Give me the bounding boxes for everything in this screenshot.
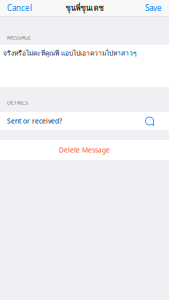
staticText: Cancel <box>7 3 32 13</box>
staticText: DETAILS <box>7 99 28 106</box>
staticText: MESSAGE <box>7 34 31 41</box>
staticText: ขุนพี่ขุนเดช <box>65 2 103 14</box>
staticText: Delete Message <box>59 146 110 154</box>
staticText: จริงหรือไม่คะที่คุณพี่ แอบไปเอาความไปหาส… <box>3 48 137 58</box>
button[interactable]: Save <box>139 0 169 16</box>
button[interactable]: Cancel <box>0 0 38 16</box>
staticText: Save <box>145 3 162 13</box>
button[interactable]: Delete Message <box>0 140 169 160</box>
staticText: Sent or received? <box>7 117 62 125</box>
button[interactable]: Sent or received? <box>0 112 169 130</box>
